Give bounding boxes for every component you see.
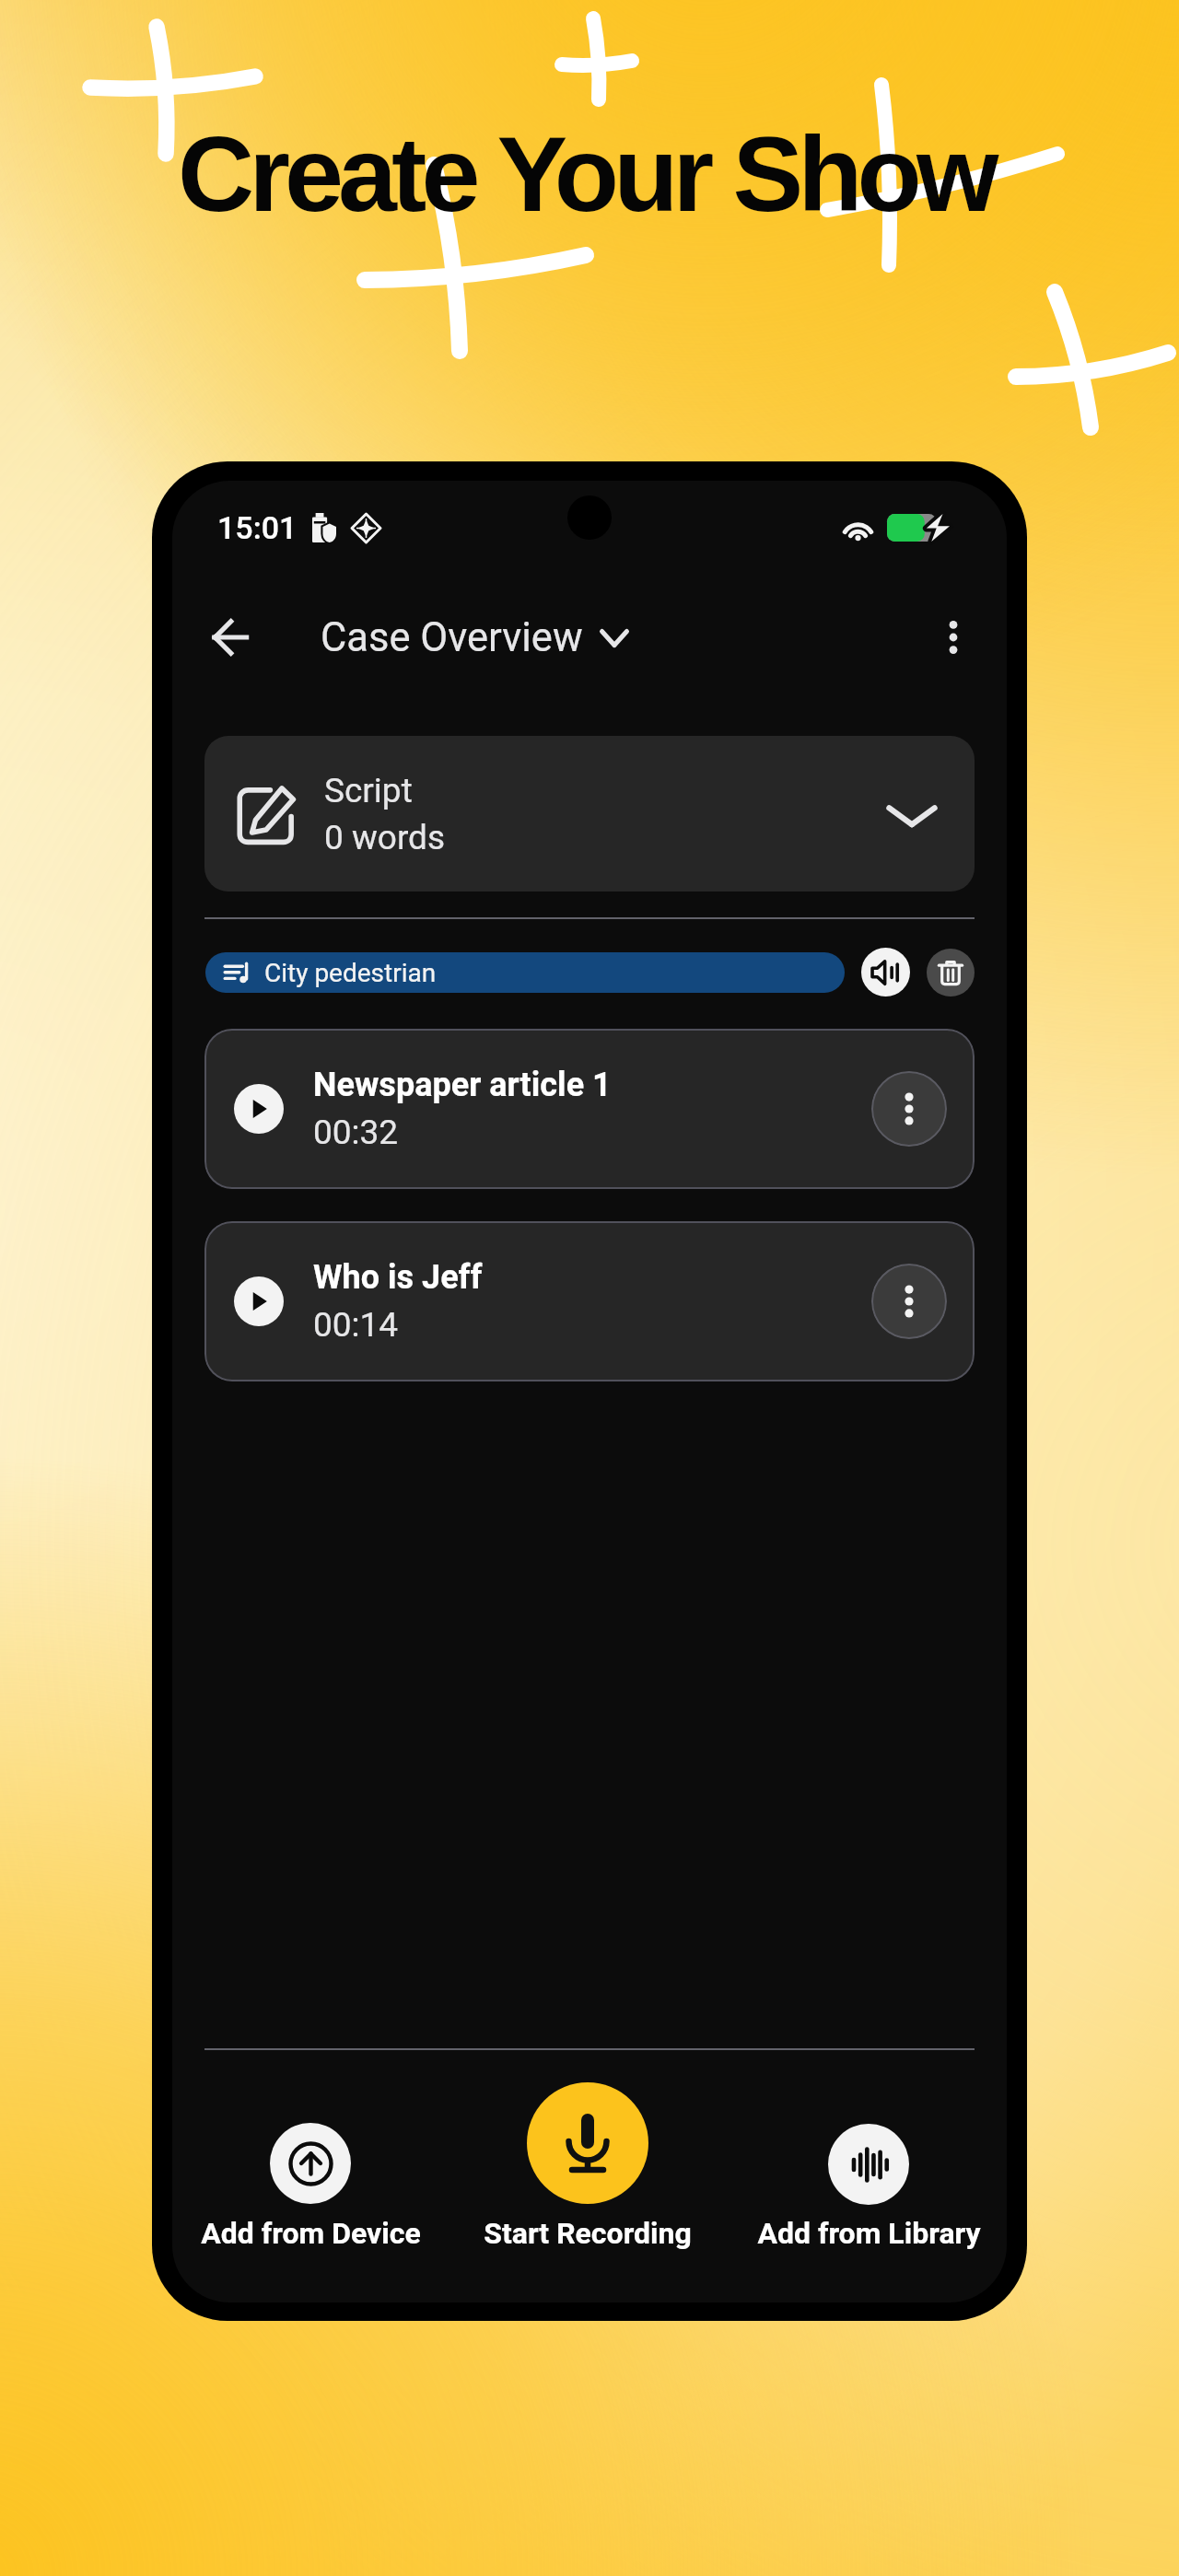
staticText: 00:32 (313, 1113, 399, 1152)
button[interactable]: Play Who is Jeff (204, 1221, 975, 1381)
staticText: Newspaper article 1 (313, 1066, 612, 1104)
button[interactable]: Play Newspaper article 1 (234, 1084, 284, 1134)
staticText: Case Overview (321, 614, 583, 661)
button[interactable]: Play Who is Jeff (234, 1276, 284, 1326)
staticText: Add from Device (201, 2216, 421, 2251)
staticText: Add from Library (757, 2216, 981, 2251)
button[interactable]: Start Recording (431, 2082, 744, 2251)
staticText: 0 words (324, 818, 446, 857)
button[interactable]: Play Newspaper article 1 (204, 1029, 975, 1189)
button[interactable]: More options (920, 604, 986, 670)
staticText: Who is Jeff (313, 1258, 483, 1297)
button[interactable]: City pedestrian (205, 952, 845, 993)
button[interactable]: Script (204, 736, 975, 892)
staticText: Script (324, 771, 413, 810)
button[interactable]: Expand script (882, 785, 941, 844)
button[interactable]: Add from Device (172, 2123, 467, 2251)
button[interactable]: Case Overview (321, 614, 629, 661)
staticText: 00:14 (313, 1305, 399, 1345)
staticText: City pedestrian (264, 958, 437, 988)
button[interactable]: Options for Newspaper article 1 (871, 1071, 947, 1147)
staticText: 15:01 (217, 509, 298, 546)
staticText: Start Recording (484, 2216, 692, 2251)
staticText: Create Your Show (178, 115, 994, 233)
button[interactable]: Volume (861, 948, 910, 997)
button[interactable]: Add from Library (712, 2124, 1007, 2251)
button[interactable]: Back (197, 604, 263, 670)
button[interactable]: Delete (927, 949, 975, 997)
button[interactable]: Options for Who is Jeff (871, 1264, 947, 1339)
